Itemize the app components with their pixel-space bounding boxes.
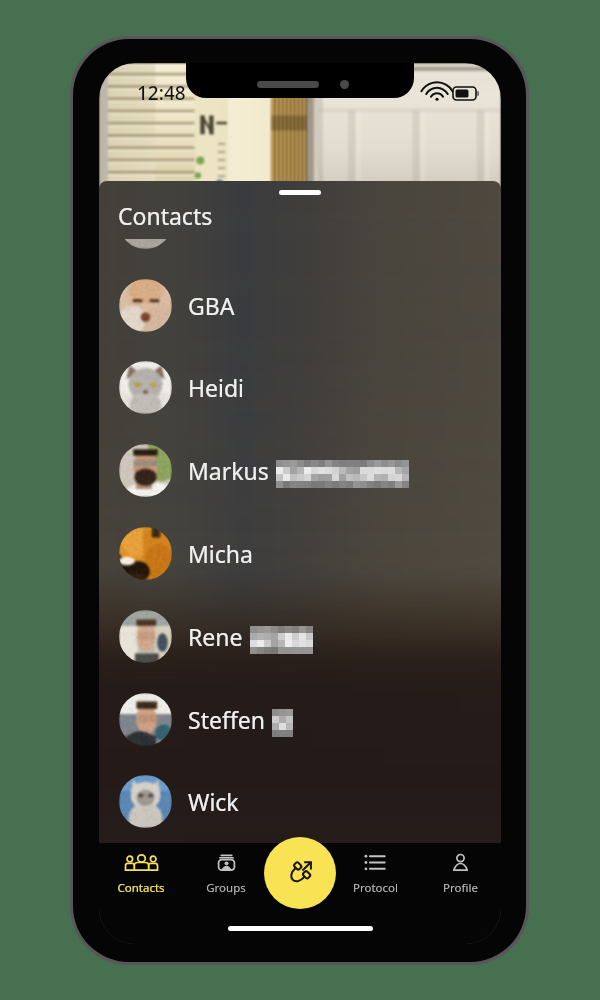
button[interactable]: Groups bbox=[188, 843, 264, 905]
staticText: Wick bbox=[188, 786, 239, 817]
staticText: Heidi bbox=[188, 372, 245, 403]
staticText: Contacts bbox=[117, 880, 165, 896]
button[interactable]: GBA bbox=[99, 264, 501, 347]
staticText: Markus bbox=[188, 455, 269, 486]
button[interactable]: New call bbox=[264, 837, 336, 909]
button[interactable]: Markus bbox=[99, 429, 501, 512]
button[interactable]: Wick bbox=[99, 760, 501, 843]
button[interactable]: Micha bbox=[99, 512, 501, 595]
staticText: Protocol bbox=[353, 880, 398, 896]
button[interactable]: Heidi bbox=[99, 346, 501, 429]
staticText: Rene bbox=[188, 621, 243, 652]
button[interactable]: Contacts bbox=[103, 843, 179, 905]
staticText: 12:48 bbox=[137, 80, 186, 106]
button[interactable]: Steffen bbox=[99, 678, 501, 761]
staticText: Contacts bbox=[118, 200, 213, 231]
button[interactable]: Protocol bbox=[337, 843, 413, 905]
button[interactable]: Profile bbox=[422, 843, 498, 905]
button[interactable]: Rene bbox=[99, 595, 501, 678]
staticText: GBA bbox=[188, 290, 235, 321]
button[interactable] bbox=[99, 239, 501, 264]
staticText: Steffen bbox=[188, 704, 265, 735]
staticText: Profile bbox=[443, 880, 478, 896]
staticText: Micha bbox=[188, 538, 253, 569]
staticText: Groups bbox=[206, 880, 246, 896]
